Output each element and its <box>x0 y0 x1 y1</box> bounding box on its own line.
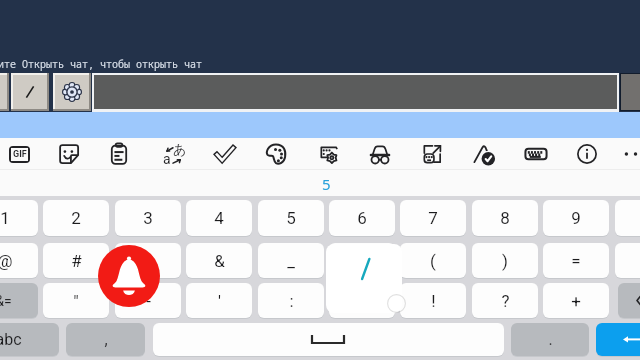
staticText: 1 <box>0 208 10 228</box>
button[interactable]: @ <box>0 243 38 278</box>
button[interactable]: Key <box>153 323 504 356</box>
button[interactable]: Notifications <box>98 245 160 307</box>
button[interactable]: ) <box>472 243 538 278</box>
button[interactable]: Theme <box>257 135 295 173</box>
staticText: / <box>358 251 366 271</box>
staticText: GIF <box>13 149 27 160</box>
staticText: - <box>146 291 151 311</box>
button[interactable]: - <box>115 283 181 318</box>
button[interactable]: , <box>66 323 145 356</box>
staticText: . <box>548 330 553 349</box>
other: Backspace <box>637 293 640 308</box>
button[interactable]: 9 <box>543 200 609 236</box>
staticText: , <box>104 330 108 349</box>
button[interactable]: More options <box>617 135 640 173</box>
button[interactable]: Key <box>596 323 640 356</box>
button[interactable]: Toolbar button <box>11 73 49 111</box>
button[interactable]: ₽ <box>115 243 181 278</box>
button[interactable]: ' <box>186 283 252 318</box>
button[interactable]: Incognito <box>361 135 399 173</box>
button[interactable]: 5 <box>258 200 324 236</box>
staticText: 9 <box>571 208 581 228</box>
button[interactable]: ? <box>472 283 538 318</box>
staticText: *&= <box>0 293 12 309</box>
button[interactable]: . <box>511 323 589 356</box>
staticText: _ <box>287 251 295 271</box>
button[interactable]: *&= <box>0 283 38 318</box>
button[interactable]: 2 <box>43 200 109 236</box>
button[interactable]: Handwriting <box>465 135 503 173</box>
staticText: 2 <box>71 208 81 228</box>
button[interactable]: 3 <box>115 200 181 236</box>
button[interactable]: Switch keyboard <box>517 135 555 173</box>
staticText: ! <box>431 291 436 311</box>
staticText: + <box>571 291 581 311</box>
button[interactable]: 5 <box>310 172 342 196</box>
button[interactable]: Resize keyboard <box>413 135 451 173</box>
staticText: 4 <box>214 208 224 228</box>
button[interactable]: + <box>543 283 609 318</box>
staticText: ' <box>218 291 221 311</box>
other: Space <box>311 335 345 344</box>
button[interactable]: " <box>43 283 109 318</box>
button[interactable]: = <box>543 243 609 278</box>
staticText: ) <box>502 251 508 271</box>
staticText: " <box>73 291 79 311</box>
button[interactable]: 1 <box>0 200 38 236</box>
button[interactable]: : <box>258 283 324 318</box>
button[interactable]: Stickers <box>50 135 88 173</box>
staticText: あ <box>173 141 187 157</box>
button[interactable]: GIF <box>0 135 38 173</box>
button[interactable]: 7 <box>400 200 466 236</box>
button[interactable]: Clipboard <box>100 135 138 173</box>
button[interactable]: # <box>43 243 109 278</box>
staticText: & <box>214 251 225 271</box>
button[interactable]: 0 <box>615 200 640 236</box>
staticText: ₽ <box>142 251 154 271</box>
staticText: abc <box>0 330 22 349</box>
staticText: : <box>289 291 294 311</box>
staticText: = <box>571 251 581 271</box>
staticText: @ <box>0 251 13 271</box>
button[interactable]: _ <box>258 243 324 278</box>
button[interactable]: & <box>186 243 252 278</box>
staticText: 5 <box>286 208 296 228</box>
other: Enter <box>623 330 640 350</box>
staticText: 3 <box>143 208 153 228</box>
staticText: 5 <box>322 174 331 194</box>
button[interactable]: ; <box>329 283 395 318</box>
button[interactable]: Info <box>568 135 606 173</box>
button[interactable]: abc <box>0 323 59 356</box>
staticText: a <box>163 151 171 167</box>
staticText: 6 <box>357 208 367 228</box>
button[interactable]: ! <box>400 283 466 318</box>
button[interactable]: Translate <box>154 135 192 173</box>
button[interactable]: Keyboard settings <box>310 135 348 173</box>
button[interactable]: Key <box>618 283 640 318</box>
staticText: ? <box>501 291 510 311</box>
button[interactable]: 6 <box>329 200 395 236</box>
button[interactable]: ( <box>400 243 466 278</box>
button[interactable]: Toolbar button <box>0 73 9 111</box>
button[interactable]: / <box>329 243 395 278</box>
staticText: ите Открыть чат, чтобы открыть чат <box>0 57 202 71</box>
button[interactable]: Slash key <box>326 244 402 313</box>
staticText: 8 <box>500 208 510 228</box>
button[interactable]: Toolbar button <box>53 73 91 111</box>
staticText: 7 <box>428 208 438 228</box>
button[interactable]: 8 <box>472 200 538 236</box>
button[interactable]: 4 <box>186 200 252 236</box>
staticText: ( <box>430 251 436 271</box>
staticText: # <box>71 251 82 271</box>
button[interactable]: Key <box>615 243 640 278</box>
button[interactable]: Spell check <box>206 135 244 173</box>
